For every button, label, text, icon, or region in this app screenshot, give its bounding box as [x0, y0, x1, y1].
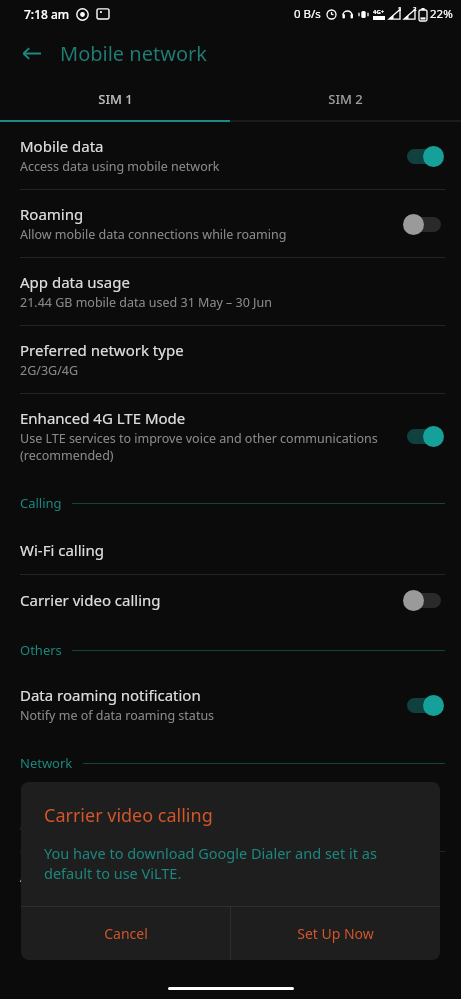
staticText: Mobile data — [20, 136, 104, 156]
button[interactable]: Cancel — [21, 907, 230, 960]
button[interactable]: App data usage — [0, 258, 461, 325]
staticText: 22% — [430, 6, 453, 22]
button[interactable]: Roaming — [0, 190, 461, 257]
staticText: Access data using mobile network — [20, 158, 220, 175]
staticText: Network — [20, 754, 73, 772]
button[interactable]: Set Up Now — [231, 907, 440, 960]
button[interactable]: SIM 1 — [0, 78, 230, 120]
button[interactable]: SIM 2 — [230, 78, 461, 120]
button[interactable]: Network operators — [0, 784, 461, 851]
button[interactable]: Access point names — [0, 852, 461, 900]
staticText: Choose a network operator — [20, 820, 181, 837]
staticText: Allow mobile data connections while roam… — [20, 226, 287, 243]
button[interactable]: Back — [14, 36, 48, 70]
staticText: Wi-Fi calling — [20, 540, 104, 560]
staticText: Carrier video calling — [20, 590, 161, 610]
staticText: 4G+ — [373, 8, 385, 16]
staticText: 1 — [398, 5, 402, 13]
staticText: Cancel — [104, 924, 148, 943]
staticText: Notify me of data roaming status — [20, 707, 215, 724]
button[interactable]: Wi-Fi calling — [0, 526, 461, 574]
staticText: Calling — [20, 494, 62, 512]
staticText: You have to download Google Dialer and s… — [44, 843, 417, 884]
button[interactable]: Data roaming notification — [0, 671, 461, 738]
staticText: Others — [20, 641, 62, 659]
staticText: Access point names — [20, 866, 159, 886]
staticText: 2 — [413, 5, 417, 13]
staticText: Roaming — [20, 204, 84, 224]
staticText: Preferred network type — [20, 340, 184, 360]
staticText: Mobile network — [60, 40, 207, 67]
button[interactable]: Carrier video calling — [0, 575, 461, 625]
staticText: Use LTE services to improve voice and ot… — [20, 430, 393, 464]
button[interactable]: Mobile data — [0, 122, 461, 189]
button[interactable]: Enhanced 4G LTE Mode — [0, 394, 461, 478]
button[interactable]: Preferred network type — [0, 326, 461, 393]
staticText: Carrier video calling — [44, 803, 213, 828]
staticText: Network operators — [20, 798, 154, 818]
staticText: SIM 1 — [98, 90, 133, 108]
staticText: Enhanced 4G LTE Mode — [20, 408, 186, 428]
staticText: SIM 2 — [328, 90, 363, 108]
staticText: 0 B/s — [294, 6, 321, 22]
staticText: Data roaming notification — [20, 685, 201, 705]
staticText: 21.44 GB mobile data used 31 May – 30 Ju… — [20, 294, 272, 311]
staticText: Set Up Now — [297, 924, 374, 943]
staticText: App data usage — [20, 272, 130, 292]
staticText: 7:18 am — [24, 6, 70, 22]
staticText: 2G/3G/4G — [20, 362, 79, 379]
